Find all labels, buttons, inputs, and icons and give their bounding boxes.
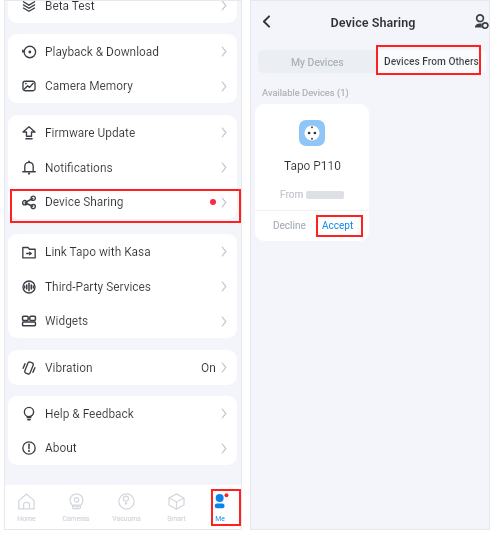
button[interactable]: Notifications: [8, 150, 237, 185]
button[interactable]: Me: [201, 485, 239, 530]
button[interactable]: Smart: [151, 485, 201, 530]
staticText: Widgets: [45, 314, 89, 328]
staticText: About: [45, 441, 77, 455]
staticText: Third-Party Services: [45, 280, 151, 294]
staticText: Notifications: [45, 161, 113, 175]
button[interactable]: Manage shared users: [470, 11, 492, 33]
staticText: Devices From Others: [384, 56, 479, 68]
staticText: Link Tapo with Kasa: [45, 245, 151, 259]
staticText: Me: [215, 515, 225, 523]
button[interactable]: About: [8, 431, 237, 465]
staticText: Device Sharing: [253, 15, 493, 30]
staticText: Vacuums: [112, 515, 141, 523]
staticText: Playback & Download: [45, 45, 160, 59]
staticText: Smart: [167, 515, 186, 523]
button[interactable]: Back: [255, 10, 277, 32]
staticText: Tapo P110: [284, 159, 341, 173]
button[interactable]: Vibration: [8, 350, 237, 385]
staticText: Cameras: [62, 515, 90, 523]
button[interactable]: My Devices: [258, 50, 376, 73]
button[interactable]: Link Tapo with Kasa: [8, 234, 237, 269]
staticText: Beta Test: [45, 0, 95, 13]
button[interactable]: Third-Party Services: [8, 269, 237, 304]
staticText: On: [201, 361, 216, 375]
button[interactable]: Help & Feedback: [8, 396, 237, 431]
button[interactable]: Cameras: [51, 485, 101, 530]
button[interactable]: Devices From Others: [376, 50, 486, 73]
staticText: My Devices: [291, 56, 344, 68]
button[interactable]: Camera Memory: [8, 69, 237, 103]
staticText: Available Devices (1): [262, 87, 349, 98]
button[interactable]: Decline: [255, 211, 314, 241]
button[interactable]: Device Sharing: [8, 185, 237, 219]
button[interactable]: Firmware Update: [8, 115, 237, 150]
staticText: From: [280, 189, 306, 201]
staticText: Help & Feedback: [45, 407, 134, 421]
button[interactable]: Accept: [314, 211, 369, 241]
staticText: Accept: [322, 220, 354, 232]
button[interactable]: Vacuums: [101, 485, 151, 530]
staticText: Decline: [273, 220, 306, 232]
button[interactable]: Widgets: [8, 304, 237, 338]
button[interactable]: Beta Test: [8, 0, 237, 23]
staticText: Home: [17, 515, 36, 523]
button[interactable]: Playback & Download: [8, 34, 237, 69]
button[interactable]: Home: [1, 485, 51, 530]
staticText: Device Sharing: [45, 195, 124, 209]
staticText: Vibration: [45, 361, 93, 375]
staticText: Firmware Update: [45, 126, 136, 140]
staticText: Camera Memory: [45, 79, 133, 93]
